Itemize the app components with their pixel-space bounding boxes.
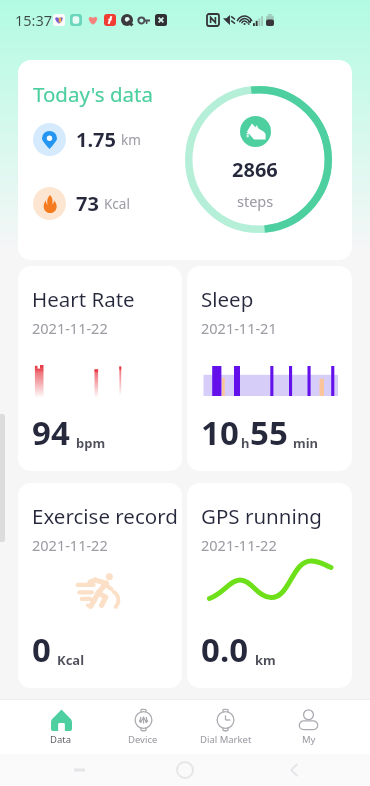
- staticText: steps: [237, 191, 274, 211]
- staticText: bpm: [76, 434, 106, 452]
- button[interactable]: Dial Market: [184, 700, 267, 754]
- staticText: Data: [50, 733, 72, 746]
- staticText: 10: [201, 410, 239, 455]
- staticText: km: [121, 131, 141, 149]
- staticText: Kcal: [104, 195, 130, 213]
- staticText: 73: [76, 190, 99, 217]
- staticText: Today's data: [33, 80, 153, 108]
- staticText: 2021-11-22: [32, 318, 108, 338]
- staticText: 94: [32, 410, 70, 455]
- staticText: 1.75: [76, 126, 116, 153]
- staticText: Kcal: [57, 651, 85, 669]
- staticText: 2021-11-21: [201, 318, 277, 338]
- staticText: 2021-11-22: [32, 535, 108, 555]
- staticText: Sleep: [201, 285, 254, 313]
- staticText: Heart Rate: [32, 285, 135, 313]
- button[interactable]: Device: [102, 700, 184, 754]
- button[interactable]: Today's data: [18, 60, 352, 260]
- staticText: 0.0: [201, 627, 249, 672]
- staticText: 2021-11-22: [201, 535, 277, 555]
- staticText: Exercise record: [32, 502, 178, 530]
- staticText: Device: [128, 733, 158, 746]
- button[interactable]: My: [267, 700, 350, 754]
- staticText: 55: [250, 410, 288, 455]
- staticText: 15:37: [15, 10, 53, 30]
- button[interactable]: Heart Rate: [18, 266, 182, 471]
- staticText: km: [255, 651, 276, 669]
- button[interactable]: Sleep: [187, 266, 352, 471]
- staticText: Dial Market: [200, 733, 252, 746]
- staticText: 2866: [232, 156, 278, 183]
- button[interactable]: Data: [20, 700, 102, 754]
- staticText: h: [241, 434, 250, 452]
- button[interactable]: GPS running: [187, 483, 352, 688]
- staticText: min: [293, 434, 319, 452]
- button[interactable]: Exercise record: [18, 483, 182, 688]
- staticText: My: [302, 733, 316, 746]
- staticText: 0: [32, 627, 51, 672]
- staticText: GPS running: [201, 502, 322, 530]
